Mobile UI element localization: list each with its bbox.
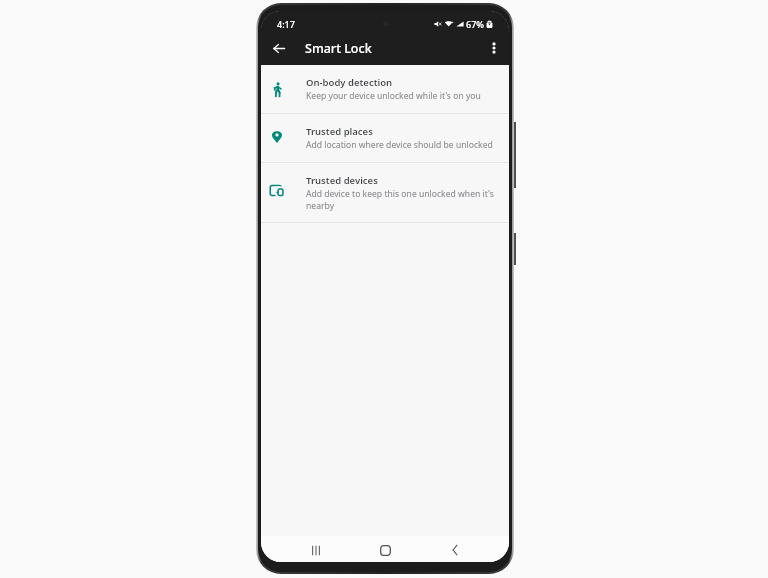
staticText: Keep your device unlocked while it's on … [306, 90, 481, 102]
staticText: Trusted devices [306, 174, 378, 187]
button[interactable]: Trusted devices [261, 163, 509, 222]
button[interactable]: More options [481, 35, 507, 61]
staticText: 67% [466, 18, 484, 30]
staticText: 4:17 [277, 18, 295, 30]
button[interactable]: Trusted places [261, 114, 509, 162]
staticText: Add device to keep this one unlocked whe… [306, 188, 502, 211]
staticText: Add location where device should be unlo… [306, 139, 493, 151]
button[interactable]: On-body detection [261, 65, 509, 113]
button[interactable]: Back [266, 35, 292, 61]
button[interactable]: Recents [301, 537, 331, 561]
button[interactable]: Home [370, 537, 400, 561]
staticText: Trusted places [306, 125, 373, 138]
staticText: On-body detection [306, 76, 393, 89]
button[interactable]: Back [440, 537, 470, 561]
staticText: Smart Lock [305, 40, 372, 57]
